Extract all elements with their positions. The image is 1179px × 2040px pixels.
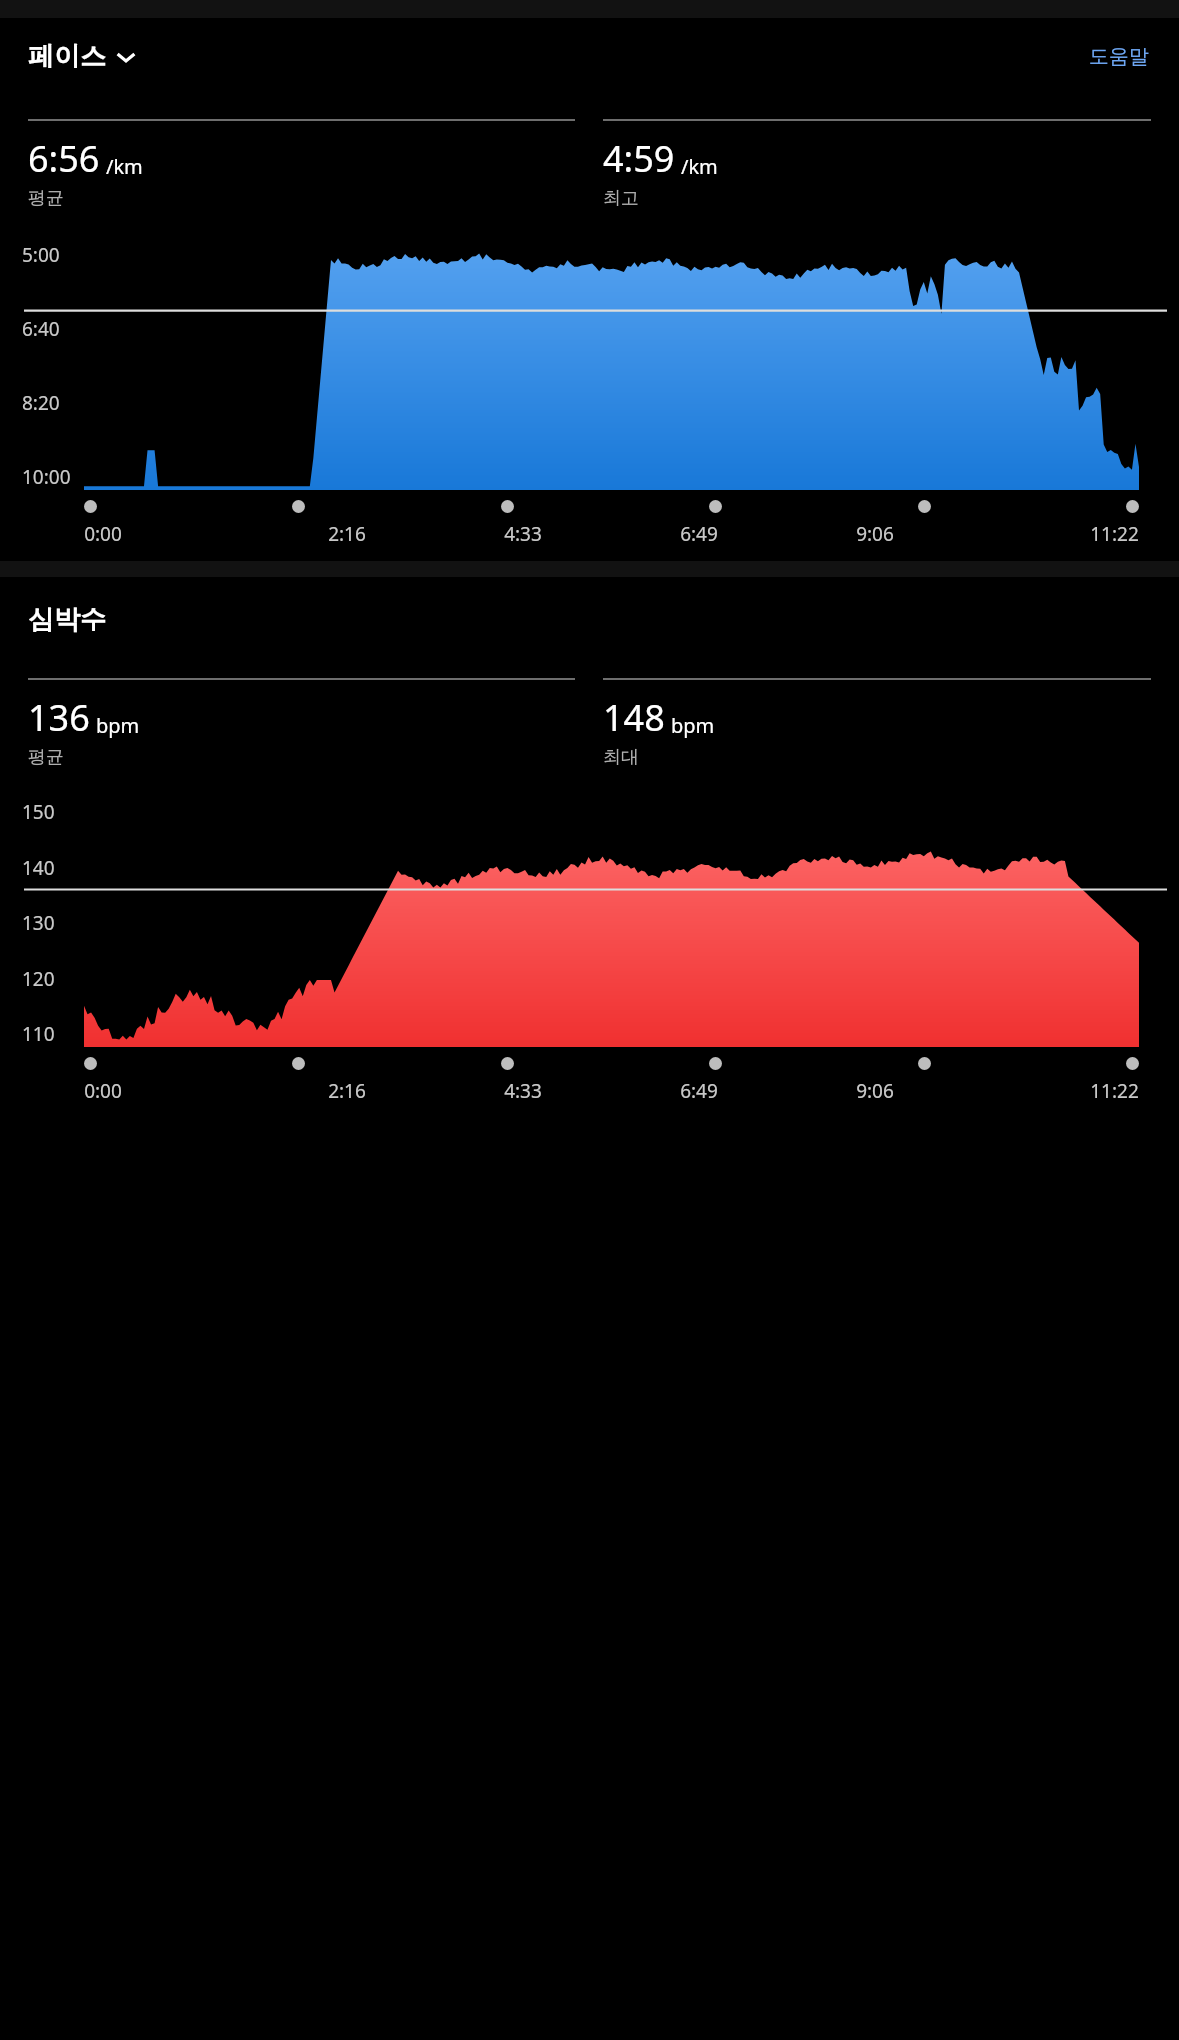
staticText: /km xyxy=(106,153,143,180)
staticText: 6:56 xyxy=(28,134,100,183)
staticText: 9:06 xyxy=(856,1078,894,1104)
button[interactable]: 도움말 xyxy=(1087,40,1151,73)
staticText: bpm xyxy=(96,712,140,739)
staticText: 148 xyxy=(603,693,665,742)
staticText: 0:00 xyxy=(84,1078,122,1104)
staticText: 4:33 xyxy=(504,1078,542,1104)
staticText: 6:49 xyxy=(680,521,718,547)
staticText: 11:22 xyxy=(1090,1078,1139,1104)
staticText: 4:33 xyxy=(504,521,542,547)
staticText: 10:00 xyxy=(22,464,71,490)
staticText: 120 xyxy=(22,966,55,992)
staticText: 페이스 xyxy=(28,40,106,73)
staticText: 9:06 xyxy=(856,521,894,547)
staticText: 136 xyxy=(28,693,90,742)
staticText: bpm xyxy=(671,712,715,739)
staticText: 평균 xyxy=(28,746,64,769)
staticText: 2:16 xyxy=(328,521,366,547)
button[interactable]: 136 xyxy=(28,678,575,769)
staticText: 4:59 xyxy=(603,134,675,183)
button[interactable]: 148 xyxy=(603,678,1151,769)
staticText: 5:00 xyxy=(22,242,60,268)
staticText: 도움말 xyxy=(1089,44,1149,69)
staticText: 11:22 xyxy=(1090,521,1139,547)
staticText: 0:00 xyxy=(84,521,122,547)
staticText: 150 xyxy=(22,799,55,825)
staticText: 6:40 xyxy=(22,316,60,342)
staticText: 6:49 xyxy=(680,1078,718,1104)
button[interactable]: 6:56 xyxy=(28,119,575,210)
staticText: 8:20 xyxy=(22,390,60,416)
button[interactable]: 4:59 xyxy=(603,119,1151,210)
staticText: 심박수 xyxy=(28,603,106,636)
staticText: 110 xyxy=(22,1021,55,1047)
staticText: 최고 xyxy=(603,187,639,210)
staticText: 최대 xyxy=(603,746,639,769)
staticText: 평균 xyxy=(28,187,64,210)
staticText: /km xyxy=(681,153,718,180)
staticText: 140 xyxy=(22,855,55,881)
button[interactable]: 페이스 xyxy=(28,36,136,77)
staticText: 2:16 xyxy=(328,1078,366,1104)
staticText: 130 xyxy=(22,910,55,936)
